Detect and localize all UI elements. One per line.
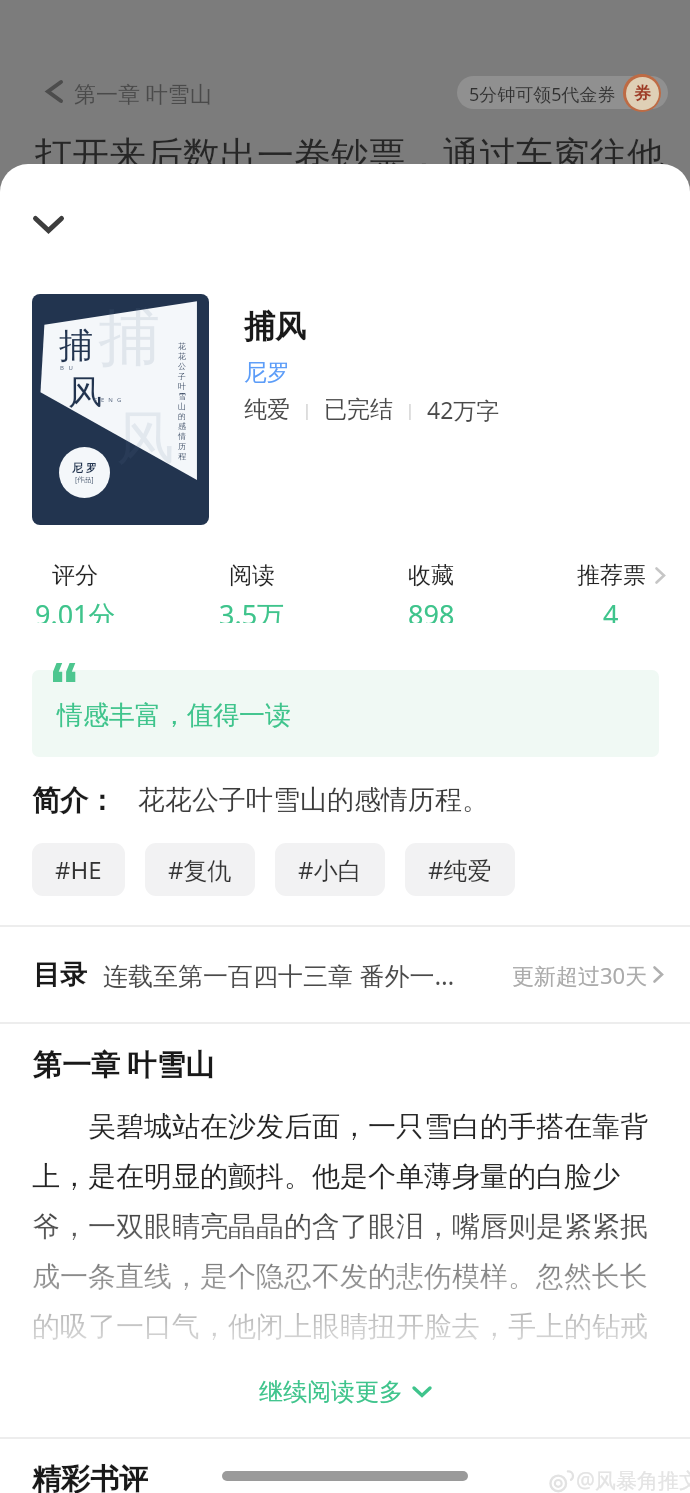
staticText: 42万字 [427,394,500,425]
staticText: B U [60,364,75,372]
staticText: | [290,399,324,421]
staticText: 叶 [178,381,186,391]
staticText: 更新超过30天 [512,960,648,990]
button[interactable]: 5分钟可领5代金券 [457,76,668,109]
staticText: 4 [603,596,619,623]
staticText: 尼 罗 [72,460,97,475]
staticText: 纯爱 [244,395,290,424]
staticText: 感 [178,421,186,431]
staticText: 目录 [33,958,87,992]
staticText: 简介： [32,783,116,818]
staticText: 精彩书评 [32,1461,148,1493]
staticText: 风 [116,402,174,475]
button[interactable]: Collapse [21,204,76,245]
staticText: 收藏 [408,561,454,590]
staticText: #小白 [298,853,362,886]
staticText: 吴碧城站在沙发后面，一只雪白的手搭在靠背上，是在明显的颤抖。他是个单薄身量的白脸… [32,1106,658,1345]
staticText: 情 [178,431,186,441]
staticText: 尼罗 [244,358,290,387]
button[interactable]: #小白 [275,843,385,896]
button[interactable]: #复仇 [145,843,255,896]
staticText: 花花公子叶雪山的感情历程。 [138,783,489,817]
staticText: [作品] [75,475,94,485]
staticText: 公 [178,361,186,371]
button[interactable]: 继续阅读更多 [0,1371,690,1413]
button[interactable]: 阅读 [162,561,342,623]
staticText: #HE [55,853,102,886]
staticText: 风 [68,371,102,414]
staticText: 第一章 叶雪山 [74,78,212,108]
staticText: 阅读 [229,561,275,590]
button[interactable]: 推荐票 [531,561,690,623]
staticText: F E N G [94,396,123,404]
staticText: 捕 [98,299,160,377]
staticText: 子 [178,371,186,381]
staticText: 继续阅读更多 [259,1377,403,1407]
button[interactable]: #HE [32,843,125,896]
staticText: 捕风 [244,307,306,346]
staticText: @风暴角推文 [576,1466,690,1493]
button[interactable] [32,670,659,757]
staticText: 打开来后数出一卷钞票，通过车窗往他 [35,132,664,179]
staticText: 花 [178,351,186,361]
staticText: 第一章 叶雪山 [33,1044,215,1084]
staticText: 捕 [59,324,93,367]
staticText: 程 [178,451,186,461]
staticText: 的 [178,411,186,421]
staticText: 券 [634,83,651,104]
staticText: 山 [178,401,186,411]
staticText: 3.5万 [219,596,285,623]
staticText: #纯爱 [428,853,492,886]
staticText: | [393,399,427,421]
staticText: 推荐票 [577,561,646,590]
staticText: #复仇 [168,853,232,886]
staticText: 情感丰富，值得一读 [57,699,291,732]
staticText: 历 [178,441,186,451]
staticText: 9.01分 [35,596,116,623]
button[interactable]: 目录 [0,927,690,1022]
button[interactable]: #纯爱 [405,843,515,896]
staticText: 雪 [178,391,186,401]
button[interactable]: 收藏 [341,561,521,623]
staticText: 连载至第一百四十三章 番外一… [103,958,455,992]
staticText: 花 [178,341,186,351]
staticText: 评分 [52,561,98,590]
staticText: 已完结 [324,395,393,424]
staticText: 898 [408,596,455,623]
button[interactable]: 评分 [0,561,165,623]
staticText: 5分钟可领5代金券 [469,82,616,107]
